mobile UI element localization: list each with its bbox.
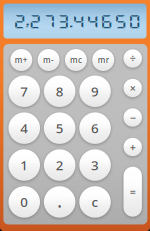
staticText: − xyxy=(130,110,136,125)
button[interactable]: 8 xyxy=(44,75,75,107)
button[interactable]: × xyxy=(123,79,142,97)
button[interactable]: m+ xyxy=(10,49,32,71)
button[interactable]: 2 xyxy=(44,149,75,181)
button[interactable]: − xyxy=(123,108,142,127)
staticText: 1 xyxy=(20,156,28,174)
button[interactable]: 9 xyxy=(79,75,111,107)
staticText: 2,273.44650 xyxy=(31,13,123,29)
button[interactable]: 3 xyxy=(79,149,111,181)
button[interactable]: 5 xyxy=(44,112,75,144)
staticText: mc xyxy=(70,55,82,65)
staticText: 0 xyxy=(20,193,28,211)
staticText: ÷ xyxy=(130,51,136,66)
staticText: . xyxy=(57,189,62,212)
button[interactable]: ÷ xyxy=(123,49,142,68)
staticText: m+ xyxy=(15,55,28,65)
button[interactable]: . xyxy=(44,186,75,218)
staticText: 3 xyxy=(91,156,99,174)
staticText: 8 xyxy=(56,82,64,100)
staticText: = xyxy=(130,185,136,199)
staticText: 4 xyxy=(20,119,28,137)
staticText: 6 xyxy=(91,119,99,137)
button[interactable]: 1 xyxy=(8,149,40,181)
button[interactable]: 0 xyxy=(8,186,40,218)
staticText: + xyxy=(130,140,136,154)
button[interactable]: m- xyxy=(38,49,60,71)
button[interactable]: mr xyxy=(92,49,114,71)
button[interactable]: 4 xyxy=(8,112,40,144)
button[interactable]: c xyxy=(79,186,111,218)
staticText: 9 xyxy=(91,82,99,100)
button[interactable]: = xyxy=(123,167,142,217)
button[interactable]: 7 xyxy=(8,75,40,107)
button[interactable]: mc xyxy=(65,49,87,71)
staticText: 7 xyxy=(20,82,28,100)
staticText: × xyxy=(130,81,136,95)
button[interactable]: + xyxy=(123,138,142,156)
staticText: 5 xyxy=(56,119,64,137)
staticText: mr xyxy=(98,55,109,65)
staticText: 2 xyxy=(56,156,64,174)
staticText: c xyxy=(91,193,98,211)
staticText: m- xyxy=(43,55,54,65)
button[interactable]: 6 xyxy=(79,112,111,144)
